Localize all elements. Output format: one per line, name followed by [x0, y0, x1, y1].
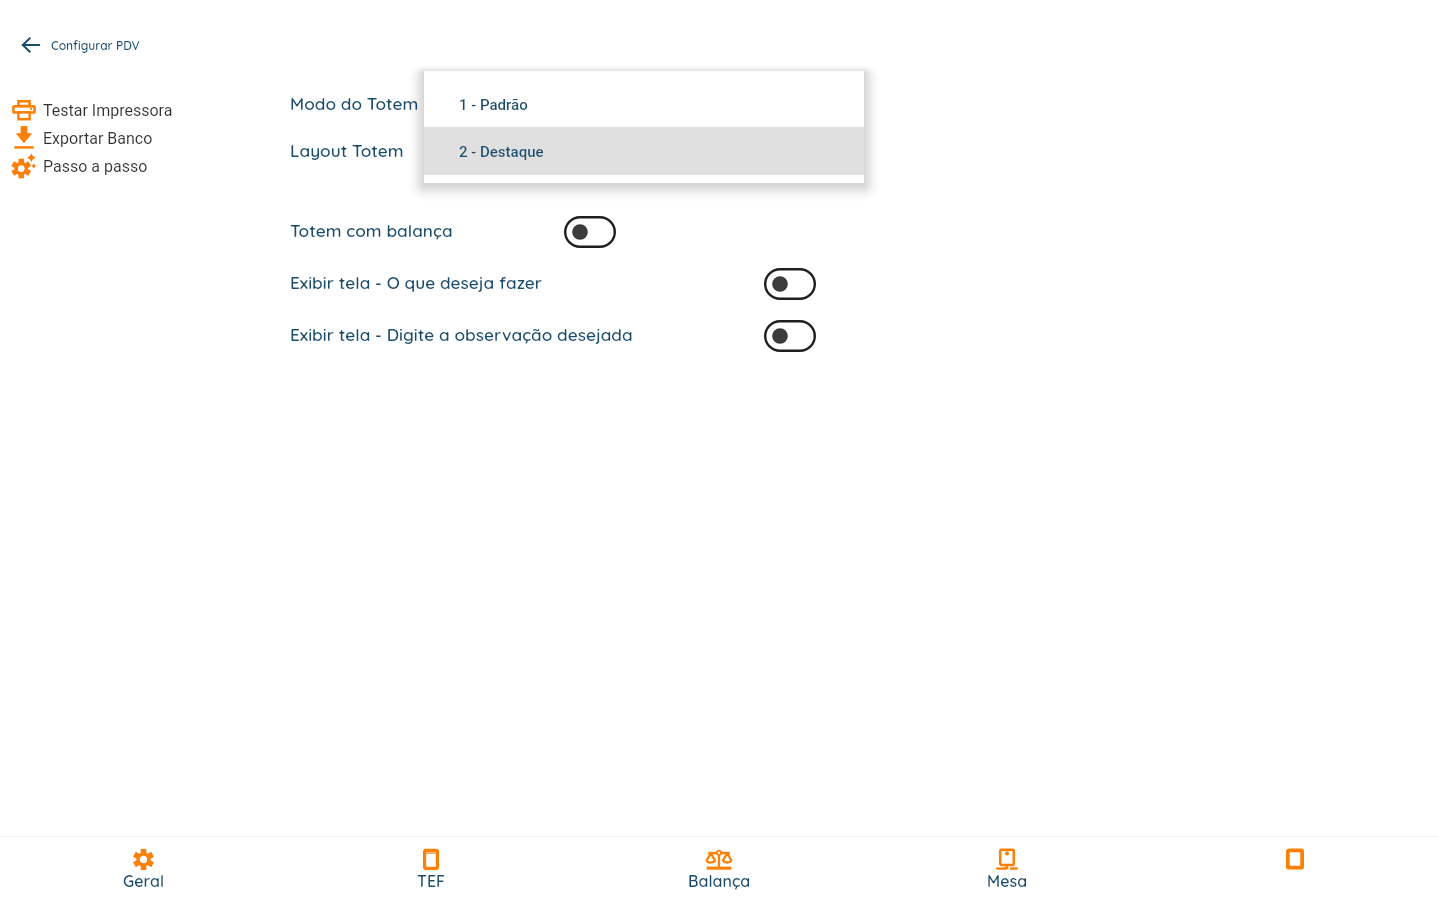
button[interactable]: More options [1151, 837, 1439, 899]
staticText: Modo do Totem [290, 93, 419, 115]
button[interactable]: Back, Configurar PDV [14, 30, 146, 60]
staticText: Configurar PDV [51, 38, 140, 53]
button[interactable]: Exibir tela - O que deseja fazer [764, 268, 816, 300]
staticText: 1 - Padrão [459, 96, 528, 114]
staticText: Exibir tela - Digite a observação deseja… [290, 324, 633, 346]
staticText: Passo a passo [43, 157, 148, 176]
button[interactable]: Exibir tela - Digite a observação deseja… [764, 320, 816, 352]
staticText: TEF [417, 871, 446, 891]
button[interactable]: Testar Impressora [6, 98, 179, 122]
staticText: Balança [688, 871, 751, 891]
button[interactable]: TEF [287, 837, 575, 899]
button[interactable]: Mesa [863, 837, 1151, 899]
button[interactable]: Geral [0, 837, 287, 899]
staticText: Testar Impressora [43, 101, 173, 120]
staticText: Exibir tela - O que deseja fazer [290, 272, 543, 294]
button[interactable]: 1 - Padrão [424, 71, 864, 127]
button[interactable]: Passo a passo [6, 154, 154, 178]
staticText: Mesa [987, 871, 1028, 891]
button[interactable]: Totem com balança [564, 216, 616, 248]
staticText: Exportar Banco [43, 129, 153, 148]
button[interactable]: Balança [575, 837, 863, 899]
staticText: Geral [123, 871, 164, 891]
button[interactable]: Exportar Banco [6, 126, 159, 150]
staticText: 2 - Destaque [459, 143, 544, 161]
staticText: Layout Totem [290, 140, 404, 162]
staticText: Totem com balança [290, 220, 453, 242]
button[interactable]: 2 - Destaque [424, 127, 864, 175]
